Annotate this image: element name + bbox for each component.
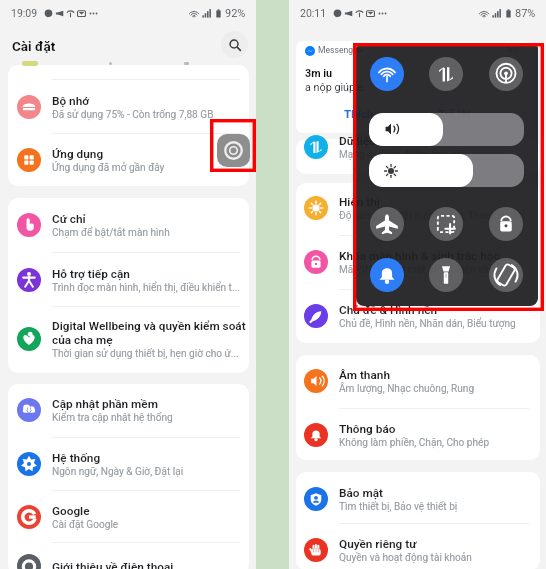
button[interactable] [7, 384, 246, 436]
staticText: Khóa màn hình & sinh trắc học [339, 249, 500, 263]
staticText: a nộp giúp e [305, 81, 364, 94]
button[interactable]: Thích [344, 107, 374, 120]
staticText: của cha mẹ [52, 333, 113, 347]
button[interactable] [7, 81, 246, 133]
staticText: Mã PIN, Khuôn mặt, Nhận diện vân tay [339, 264, 510, 276]
staticText: Cài đặt Google [52, 519, 119, 531]
button[interactable]: Quick setting toggle [489, 258, 523, 292]
button[interactable]: Quick setting toggle [489, 57, 523, 91]
button[interactable]: Slider [369, 113, 524, 146]
staticText: 92% [225, 7, 246, 20]
staticText: Chủ đề, Hình nền, Nhãn dán, Biểu tượng [339, 318, 516, 330]
button[interactable] [7, 438, 246, 490]
staticText: Độ sáng, Cài đặt hướng mắt, Thanh dư tới [339, 210, 525, 222]
staticText: 3m iu [305, 67, 333, 80]
staticText: Messenger [318, 45, 361, 55]
staticText: Thời gian sử dụng thiết bị, hẹn giờ cho … [52, 348, 239, 360]
staticText: Thông báo [339, 422, 396, 436]
staticText: Tìm thiết bị, Bảo vệ thiết bị [339, 501, 458, 513]
button[interactable]: Quick setting toggle [429, 207, 463, 241]
button[interactable]: Quick setting toggle [489, 207, 523, 241]
button[interactable]: Screen record [217, 134, 250, 167]
staticText: Google [52, 504, 90, 518]
button[interactable]: Search [221, 31, 248, 58]
staticText: Ngôn ngữ, Ngày & Giờ, Đặt lại [52, 466, 184, 478]
staticText: Hiển thị [339, 195, 380, 209]
button[interactable] [7, 491, 246, 543]
button[interactable] [294, 290, 533, 342]
staticText: 3ph [506, 45, 520, 54]
staticText: Âm thanh [339, 368, 390, 382]
staticText: Mạng di động, Điểm truy cập [339, 149, 468, 161]
button[interactable]: Quick setting toggle [370, 57, 404, 91]
staticText: Cài đặt [12, 38, 56, 54]
button[interactable] [294, 473, 533, 525]
button[interactable] [7, 254, 246, 306]
staticText: Cứ chỉ [52, 212, 86, 226]
button[interactable] [294, 409, 533, 461]
button[interactable] [7, 199, 246, 251]
staticText: Đã sử dụng 75% - Còn trống 7,88 GB [52, 109, 214, 121]
staticText: Chạm để bật/tắt màn hình [52, 227, 170, 239]
staticText: Ứng dụng [52, 147, 104, 161]
button[interactable] [7, 134, 246, 186]
staticText: Chủ đề & Hình nền [339, 303, 438, 317]
button[interactable]: Messenger [296, 41, 531, 133]
staticText: Ứng dụng đã mở gần đây [52, 162, 165, 174]
staticText: Không làm phiền, Chặn, Cho phép [339, 437, 490, 449]
button[interactable] [294, 236, 533, 288]
staticText: 19:09 [11, 7, 38, 19]
staticText: Kiểm tra cập nhật hệ thống [52, 412, 173, 424]
button[interactable] [294, 355, 533, 407]
staticText: Quyền và hoạt động tài khoản [339, 552, 472, 564]
button[interactable]: Quick setting toggle [370, 258, 404, 292]
button[interactable] [7, 540, 246, 569]
button[interactable]: Quick setting toggle [429, 57, 463, 91]
button[interactable] [7, 313, 246, 365]
button[interactable]: Quick setting toggle [429, 258, 463, 292]
button[interactable] [294, 121, 533, 173]
staticText: Âm lượng, Nhạc chuông, Rung [339, 383, 475, 395]
button[interactable]: Trả lời [438, 107, 471, 120]
staticText: Bảo mật [339, 486, 383, 500]
staticText: Hỗ trợ tiếp cận [52, 267, 130, 281]
staticText: Quyền riêng tư [339, 537, 417, 551]
staticText: 20:11 [300, 7, 327, 19]
button[interactable] [294, 524, 533, 569]
button[interactable]: Quick setting toggle [370, 207, 404, 241]
button[interactable] [294, 182, 533, 234]
staticText: Giới thiệu về điện thoại [52, 560, 174, 569]
staticText: 87% [515, 7, 536, 20]
button[interactable]: Slider [369, 154, 524, 187]
staticText: Cập nhật phần mềm [52, 397, 158, 411]
staticText: Digital Wellbeing và quyền kiểm soát [52, 319, 246, 333]
staticText: Dữ liệu [339, 134, 376, 148]
staticText: Trình đọc màn hình, hiển thị, điều khiển… [52, 282, 240, 294]
staticText: Hệ thống [52, 451, 101, 465]
staticText: Bộ nhớ [52, 94, 90, 108]
